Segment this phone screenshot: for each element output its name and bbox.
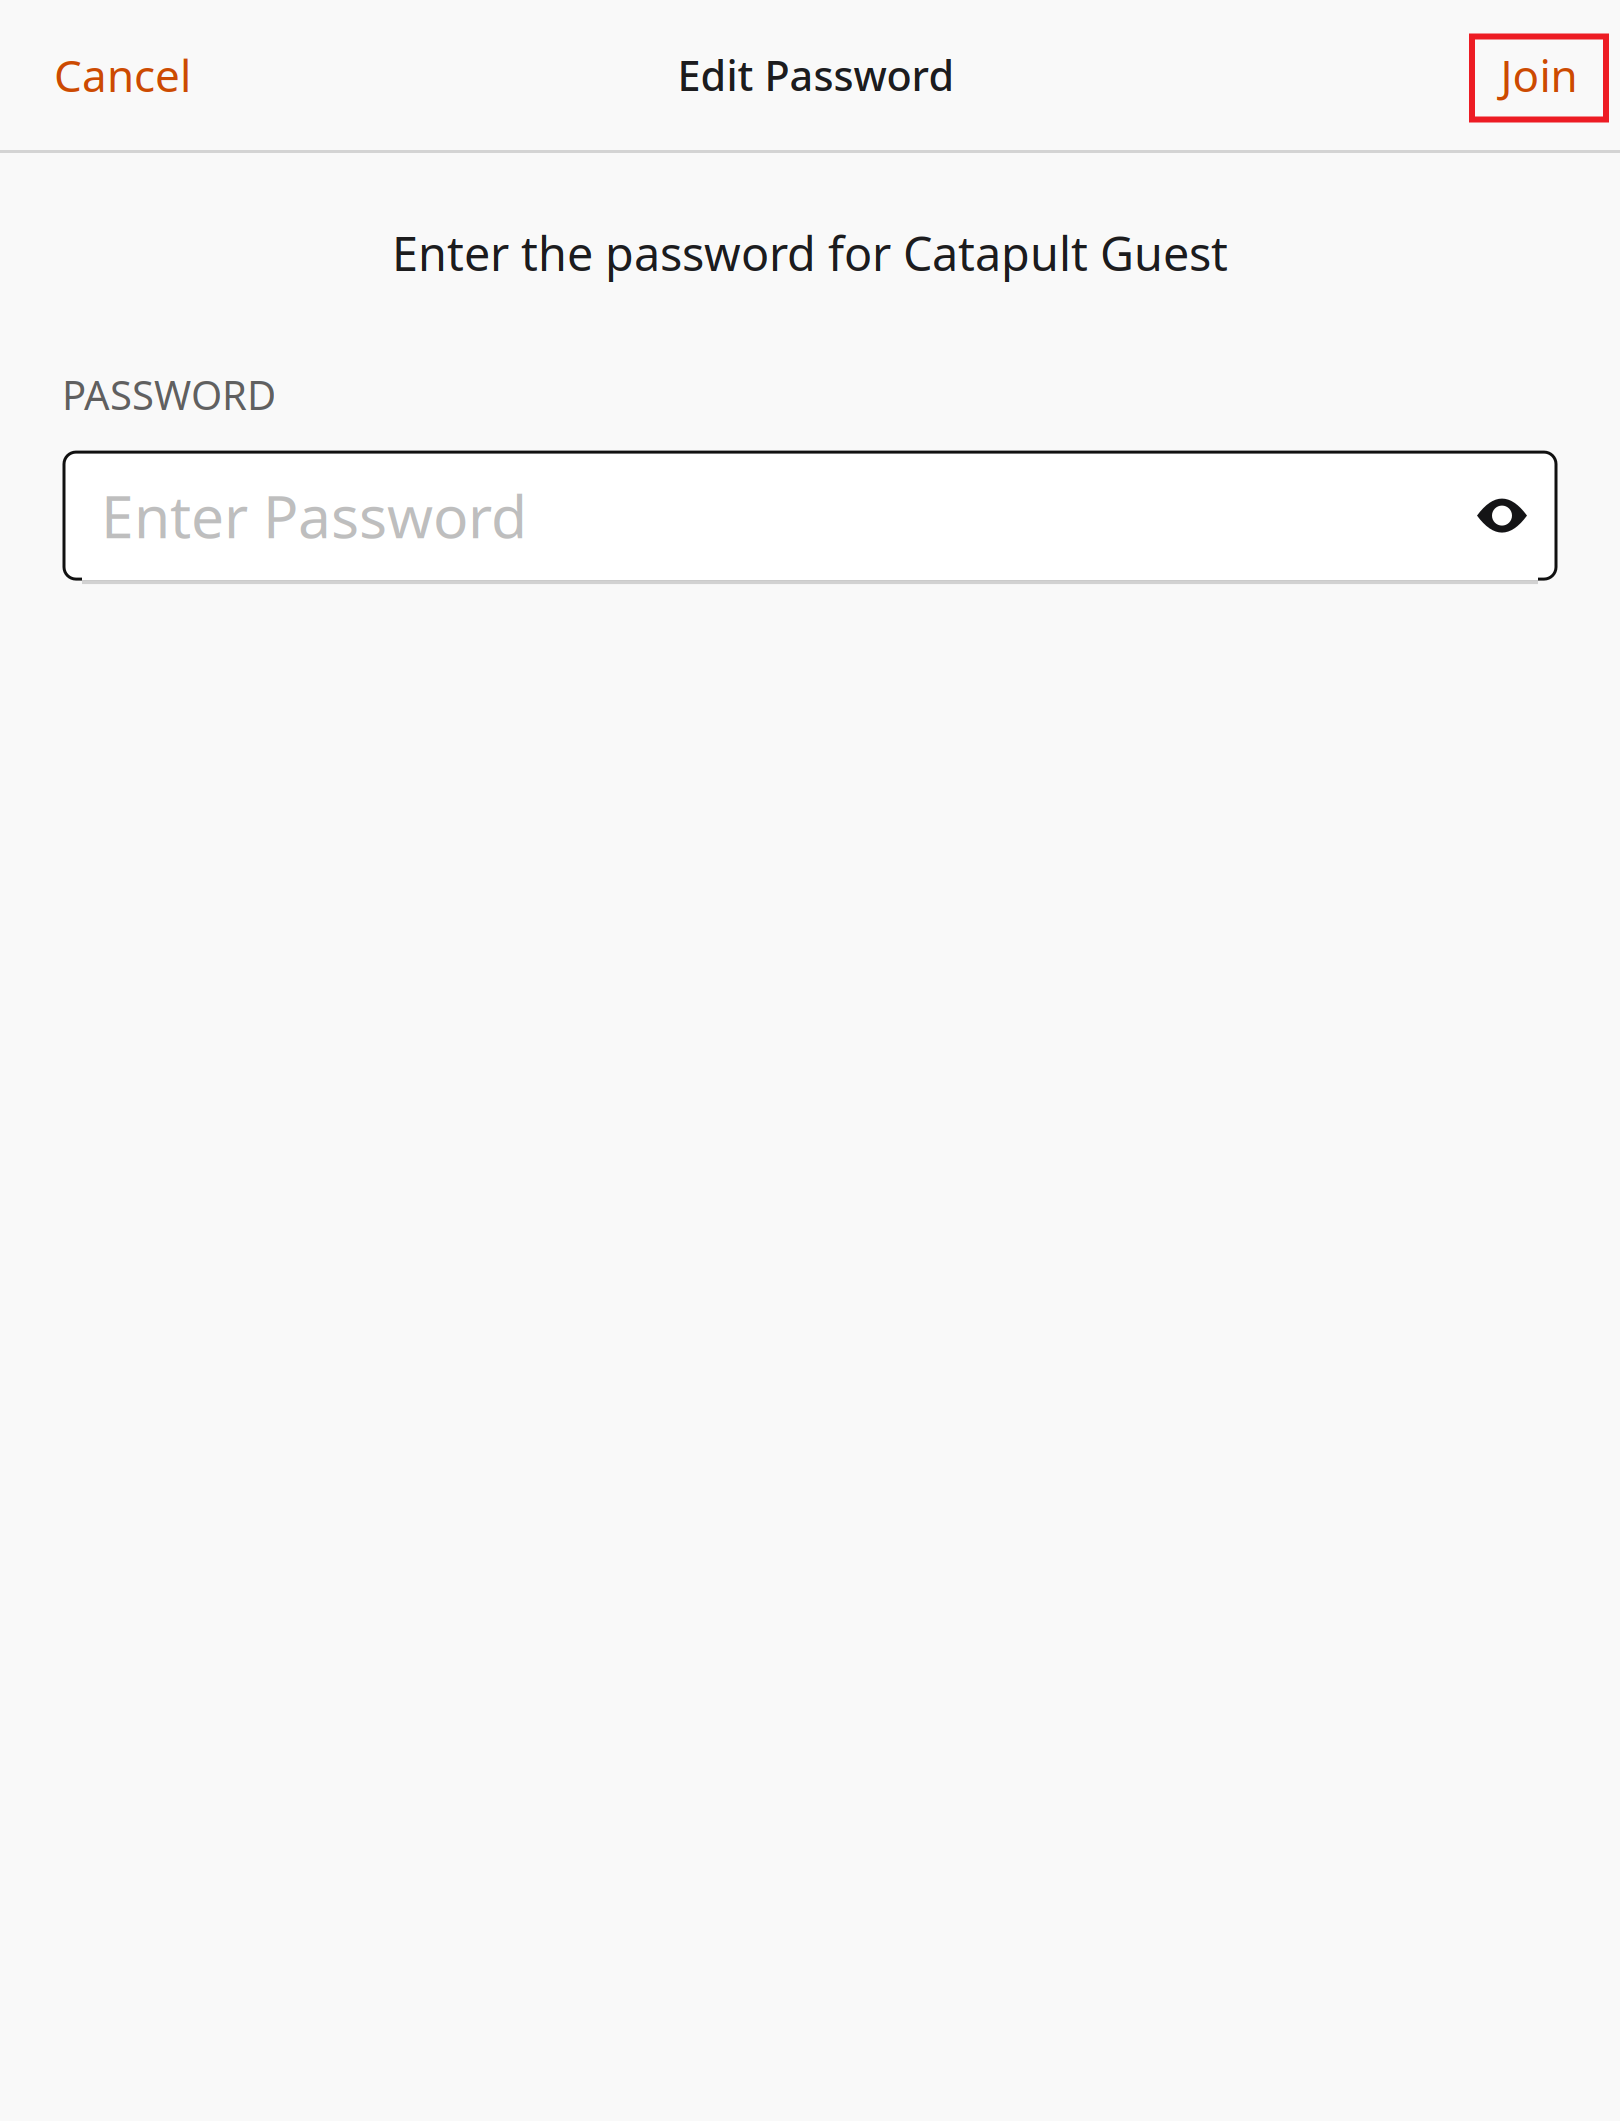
button[interactable]: Cancel xyxy=(32,20,213,130)
staticText: Enter the password for Catapult Guest xyxy=(392,222,1228,284)
button[interactable]: Enter Password xyxy=(101,452,1462,579)
staticText: Enter Password xyxy=(101,477,527,554)
staticText: Edit Password xyxy=(677,48,954,102)
staticText: Join xyxy=(1500,46,1577,104)
button[interactable]: Show password xyxy=(1462,475,1542,557)
button[interactable]: Join xyxy=(1472,33,1606,116)
staticText: Cancel xyxy=(54,46,191,104)
staticText: PASSWORD xyxy=(62,368,276,421)
